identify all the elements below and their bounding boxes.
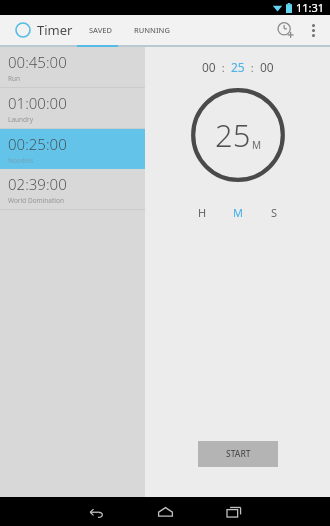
staticText: RUNNING [134, 25, 170, 35]
button[interactable]: 02:39:00 [0, 169, 145, 209]
staticText: : [245, 60, 260, 75]
staticText: M [252, 138, 262, 152]
staticText: 02:39:00 [8, 174, 67, 194]
button[interactable]: START [198, 441, 278, 467]
button[interactable]: 00:45:00 [0, 47, 145, 87]
staticText: Laundry [8, 115, 34, 124]
staticText: 00 [202, 59, 216, 75]
button[interactable]: Timer [13, 21, 75, 39]
button[interactable]: SAVED [89, 15, 113, 45]
button[interactable]: M [229, 203, 247, 221]
staticText: START [226, 448, 251, 460]
staticText: 01:00:00 [8, 93, 67, 113]
button[interactable]: 01:00:00 [0, 88, 145, 128]
button[interactable]: RUNNING [134, 15, 170, 45]
staticText: Run [8, 74, 21, 83]
button[interactable]: Add timer [270, 15, 300, 45]
button[interactable]: More options [300, 17, 326, 43]
staticText: : [216, 60, 231, 75]
staticText: SAVED [89, 25, 113, 35]
staticText: World Domination [8, 196, 64, 205]
button[interactable]: Timer dial 25 minutes [191, 88, 285, 182]
staticText: M [233, 205, 243, 220]
staticText: 00 [260, 59, 274, 75]
staticText: 00:45:00 [8, 52, 67, 72]
staticText: Noodles [8, 156, 34, 165]
button[interactable]: Back [82, 498, 110, 526]
staticText: 11:31 [296, 0, 325, 15]
staticText: H [198, 205, 207, 220]
staticText: 00:25:00 [8, 134, 67, 154]
staticText: 25 [215, 114, 251, 156]
button[interactable]: S [265, 203, 283, 221]
staticText: S [271, 205, 278, 220]
button[interactable]: Recent apps [220, 498, 248, 526]
button[interactable]: Home [151, 498, 179, 526]
staticText: Timer [37, 21, 73, 39]
staticText: 25 [231, 59, 245, 75]
button[interactable]: H [193, 203, 211, 221]
button[interactable]: 00:25:00 [0, 129, 145, 169]
